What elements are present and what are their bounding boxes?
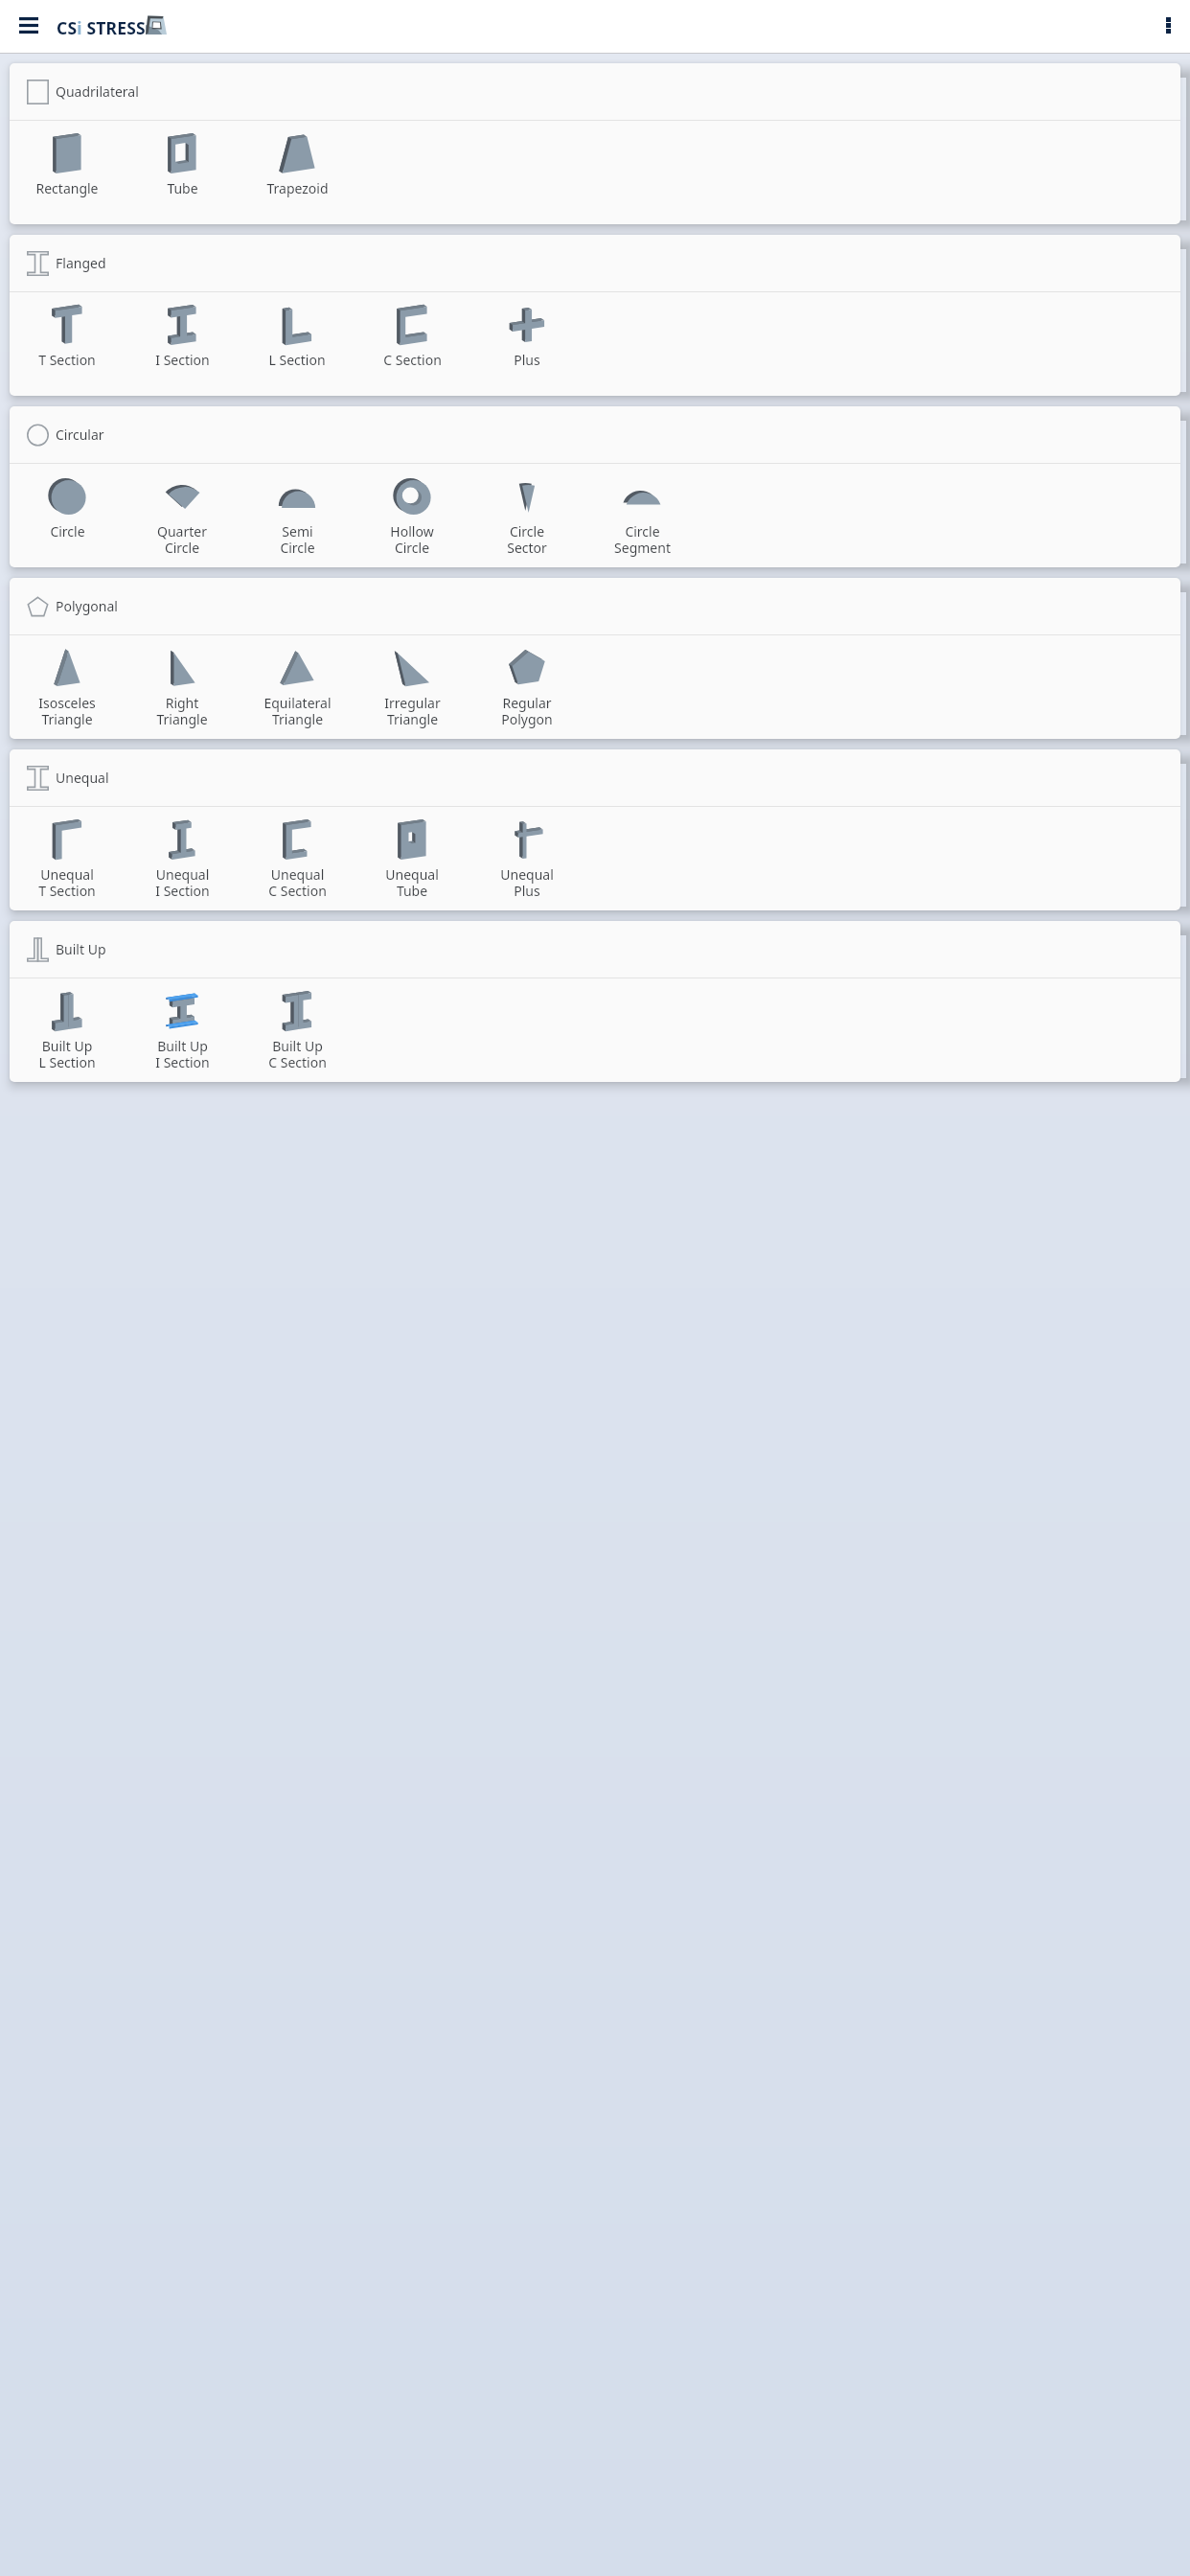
button[interactable]: Quarter Circle	[125, 464, 240, 567]
button[interactable]: Circle Sector	[469, 464, 584, 567]
button[interactable]: Unequal Plus	[469, 807, 584, 910]
staticText: Built Up C Section	[268, 1037, 327, 1071]
staticText: Circle Sector	[507, 522, 547, 557]
staticText: Irregular Triangle	[384, 694, 441, 728]
button[interactable]: Built Up C Section	[240, 978, 355, 1082]
staticText: Tube	[167, 179, 198, 197]
staticText: Built Up L Section	[38, 1037, 96, 1071]
staticText: Plus	[514, 351, 540, 369]
staticText: Unequal	[56, 769, 109, 787]
staticText: Semi Circle	[280, 522, 315, 557]
staticText: Right Triangle	[156, 694, 208, 728]
staticText: L Section	[268, 351, 326, 369]
button[interactable]: T Section	[10, 292, 125, 396]
button[interactable]: More options	[1146, 0, 1190, 50]
button[interactable]: Rectangle	[10, 121, 125, 224]
button[interactable]: Built Up I Section	[125, 978, 240, 1082]
button[interactable]: Circle	[10, 464, 125, 567]
button[interactable]: Regular Polygon	[469, 635, 584, 739]
staticText: Regular Polygon	[501, 694, 553, 728]
button[interactable]: Trapezoid	[240, 121, 355, 224]
staticText: T Section	[38, 351, 96, 369]
staticText: Built Up I Section	[155, 1037, 210, 1071]
staticText: I Section	[155, 351, 210, 369]
staticText: Circle	[50, 522, 85, 540]
staticText: Circular	[56, 425, 104, 444]
button[interactable]: Unequal	[10, 749, 1180, 806]
staticText: Quarter Circle	[157, 522, 207, 557]
staticText: C Section	[383, 351, 442, 369]
staticText: Unequal Tube	[385, 865, 439, 900]
staticText: Built Up	[56, 940, 106, 958]
button[interactable]: Built Up L Section	[10, 978, 125, 1082]
staticText: Rectangle	[35, 179, 99, 197]
button[interactable]: Plus	[469, 292, 584, 396]
staticText: Unequal I Section	[155, 865, 210, 900]
button[interactable]: L Section	[240, 292, 355, 396]
staticText: CSi STRESS	[57, 16, 146, 39]
button[interactable]: Semi Circle	[240, 464, 355, 567]
button[interactable]: Isosceles Triangle	[10, 635, 125, 739]
button[interactable]: Unequal C Section	[240, 807, 355, 910]
button[interactable]: Unequal Tube	[355, 807, 469, 910]
staticText: Polygonal	[56, 597, 118, 615]
button[interactable]: Equilateral Triangle	[240, 635, 355, 739]
staticText: Hollow Circle	[390, 522, 434, 557]
staticText: Unequal Plus	[500, 865, 554, 900]
button[interactable]: Circular	[10, 406, 1180, 463]
staticText: Equilateral Triangle	[263, 694, 332, 728]
button[interactable]: Unequal I Section	[125, 807, 240, 910]
staticText: Flanged	[56, 254, 106, 272]
staticText: Circle Segment	[614, 522, 671, 557]
button[interactable]: C Section	[355, 292, 469, 396]
button[interactable]: Flanged	[10, 235, 1180, 291]
staticText: Quadrilateral	[56, 82, 139, 101]
button[interactable]: Tube	[125, 121, 240, 224]
button[interactable]: Irregular Triangle	[355, 635, 469, 739]
staticText: Unequal T Section	[38, 865, 96, 900]
staticText: Trapezoid	[266, 179, 329, 197]
button[interactable]: Open navigation menu	[0, 0, 57, 50]
button[interactable]: Circle Segment	[584, 464, 699, 567]
staticText: Isosceles Triangle	[38, 694, 96, 728]
button[interactable]: Right Triangle	[125, 635, 240, 739]
staticText: Unequal C Section	[268, 865, 327, 900]
button[interactable]: Quadrilateral	[10, 63, 1180, 120]
button[interactable]: Unequal T Section	[10, 807, 125, 910]
button[interactable]: Built Up	[10, 921, 1180, 977]
button[interactable]: Polygonal	[10, 578, 1180, 634]
button[interactable]: I Section	[125, 292, 240, 396]
button[interactable]: Hollow Circle	[355, 464, 469, 567]
